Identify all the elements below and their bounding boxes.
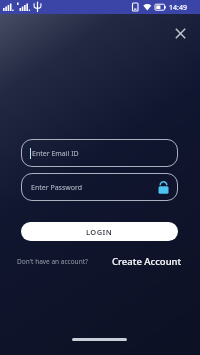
staticText: Enter Password [31,183,83,193]
staticText: LOGIN [86,227,113,237]
staticText: Don't have an account? [17,257,88,266]
button[interactable] [169,22,191,44]
button[interactable]: Enter Password [21,173,178,201]
button[interactable]: LOGIN [21,222,178,241]
button[interactable]: Enter Email ID [21,139,178,167]
button[interactable]: Create Account [112,255,182,268]
staticText: Enter Email ID [32,149,79,159]
staticText: 14:49 [169,3,187,13]
staticText: Create Account [112,255,182,268]
